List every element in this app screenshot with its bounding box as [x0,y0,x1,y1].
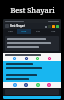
button[interactable]: Facebook [24,83,28,87]
button[interactable]: Copy [13,57,16,60]
button[interactable]: WhatsApp [36,57,39,60]
button[interactable]: Instagram [48,57,51,60]
button[interactable]: LIFE [46,29,61,34]
button[interactable]: Copy [13,83,17,87]
staticText: LIFE [51,30,56,33]
staticText: LOVE [21,30,27,33]
button[interactable]: Share app [56,25,59,28]
staticText: NEW [8,30,13,33]
button[interactable]: NEW [3,29,17,34]
button[interactable]: WhatsApp [36,83,40,87]
staticText: Best Shayari [10,24,26,28]
button[interactable]: SAD [31,29,46,34]
button[interactable]: Facebook [25,57,28,60]
button[interactable]: Rate [52,25,55,28]
button[interactable] [7,38,57,49]
staticText: Best Shayari [10,5,55,15]
button[interactable]: LOVE [17,29,31,34]
staticText: SAD [36,30,41,33]
button[interactable]: Instagram [47,83,51,87]
button[interactable] [6,63,58,80]
